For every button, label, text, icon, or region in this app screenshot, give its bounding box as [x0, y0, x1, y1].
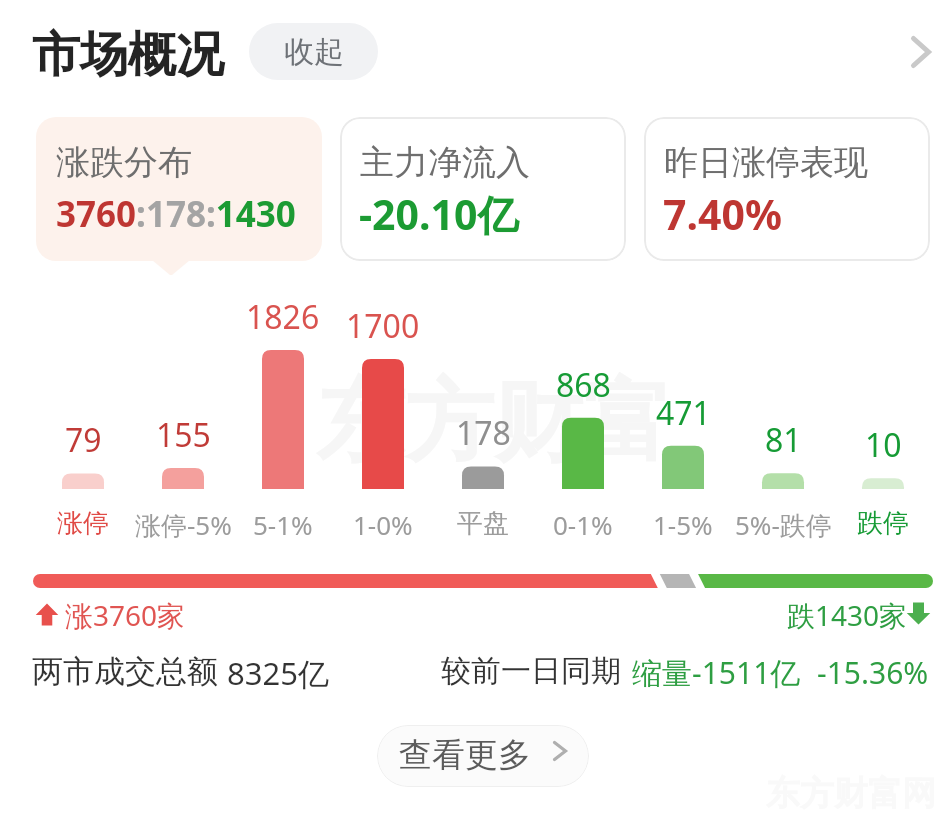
staticText: 0-1%: [553, 507, 613, 542]
staticText: 跌停: [857, 507, 909, 540]
staticText: 81: [765, 418, 802, 458]
staticText: 1-5%: [653, 507, 713, 542]
staticText: 1-0%: [353, 507, 413, 542]
staticText: 5%-跌停: [735, 507, 832, 543]
staticText: 1826: [246, 295, 320, 335]
staticText: 10: [865, 423, 902, 463]
button[interactable]: 查看更多: [377, 725, 589, 787]
staticText: 155: [156, 413, 211, 453]
staticText: 收起: [284, 33, 344, 71]
staticText: 868: [556, 363, 611, 403]
staticText: 缩量-1511亿: [632, 652, 801, 693]
staticText: 涨停: [57, 507, 109, 540]
staticText: 主力净流入: [360, 141, 530, 184]
staticText: 昨日涨停表现: [664, 141, 868, 184]
staticText: 8325亿: [227, 652, 329, 694]
staticText: 178: [456, 411, 511, 451]
staticText: 两市成交总额: [32, 652, 218, 691]
button[interactable]: 收起: [249, 23, 378, 80]
staticText: 涨停-5%: [135, 507, 232, 543]
staticText: 471: [656, 391, 711, 431]
button[interactable]: 涨跌分布: [36, 117, 322, 261]
staticText: -20.10亿: [359, 186, 519, 242]
staticText: 涨跌分布: [56, 141, 192, 184]
staticText: 跌1430家: [787, 596, 908, 634]
staticText: 3760:178:1430: [56, 190, 296, 238]
staticText: 东方财富: [316, 366, 672, 478]
button[interactable]: 主力净流入: [340, 117, 626, 261]
staticText: 较前一日同期: [441, 652, 621, 690]
staticText: -15.36%: [817, 652, 929, 693]
button[interactable]: 展开: [894, 18, 942, 86]
staticText: 5-1%: [253, 507, 313, 542]
staticText: 79: [65, 418, 102, 458]
staticText: 7.40%: [663, 186, 782, 242]
staticText: 1700: [346, 304, 420, 344]
staticText: 涨3760家: [65, 596, 186, 634]
staticText: 市场概况: [32, 25, 224, 85]
staticText: 查看更多: [399, 734, 531, 776]
staticText: 平盘: [457, 507, 509, 540]
button[interactable]: 昨日涨停表现: [644, 117, 930, 261]
